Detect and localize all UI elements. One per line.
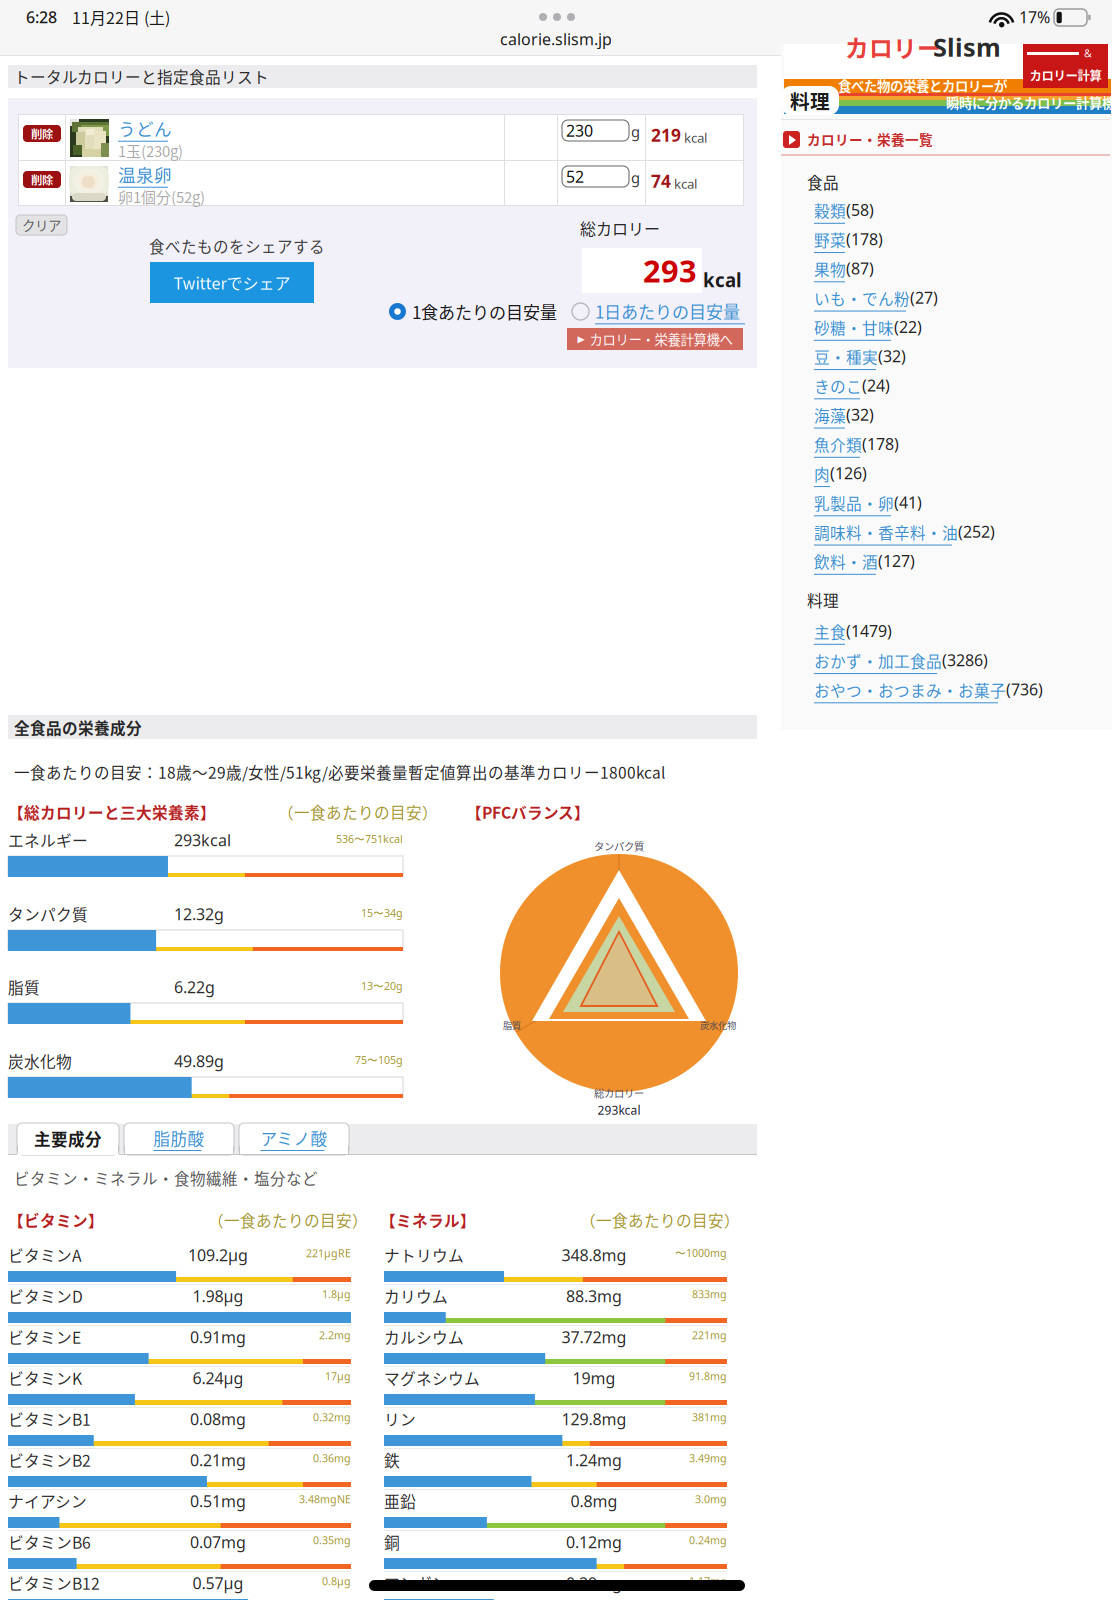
- button[interactable]: ▶: [567, 328, 743, 350]
- button[interactable]: 1食あたりの目安量: [389, 300, 561, 323]
- staticText: エネルギー: [8, 829, 88, 851]
- staticText: 脂肪酸: [153, 1126, 204, 1150]
- staticText: ナイアシン: [8, 1490, 87, 1512]
- staticText: 0.51mg: [190, 1490, 246, 1512]
- button[interactable]: Tab options: [530, 8, 584, 26]
- staticText: ▶: [577, 334, 584, 344]
- staticText: （一食あたりの目安）: [580, 1209, 740, 1231]
- staticText: （一食あたりの目安）: [278, 801, 438, 823]
- button[interactable]: 乳製品・卵: [814, 489, 1112, 518]
- button[interactable]: 魚介類: [814, 431, 1112, 460]
- staticText: 833mg: [692, 1287, 727, 1301]
- button[interactable]: Twitterでシェア: [150, 262, 314, 303]
- staticText: kcal: [703, 268, 742, 292]
- staticText: 〜1000mg: [675, 1246, 727, 1260]
- staticText: 219: [651, 123, 681, 146]
- staticText: 230: [566, 120, 593, 141]
- button[interactable]: クリア: [16, 215, 67, 235]
- staticText: kcal: [684, 129, 707, 146]
- staticText: (41): [894, 492, 922, 513]
- staticText: 銅: [384, 1531, 400, 1553]
- button[interactable]: 野菜: [814, 226, 1112, 255]
- button[interactable]: calorie.slism.jp: [500, 28, 612, 50]
- button[interactable]: 脂肪酸: [124, 1123, 234, 1154]
- button[interactable]: 削除: [23, 171, 61, 188]
- staticText: 12.32g: [174, 903, 224, 925]
- staticText: 0.91mg: [190, 1326, 246, 1348]
- staticText: 109.2µg: [188, 1244, 248, 1266]
- staticText: 13〜20g: [361, 979, 403, 993]
- staticText: おやつ・おつまみ・お菓子: [814, 679, 1006, 701]
- staticText: おかず・加工食品: [814, 649, 942, 672]
- staticText: きのこ: [814, 375, 862, 397]
- staticText: 74: [651, 169, 671, 192]
- staticText: カリウム: [384, 1285, 448, 1307]
- staticText: ナトリウム: [384, 1244, 464, 1266]
- staticText: 【ミネラル】: [380, 1209, 476, 1231]
- staticText: 0.8µg: [322, 1574, 351, 1588]
- button[interactable]: 主食: [814, 618, 1112, 647]
- button[interactable]: うどん: [118, 115, 172, 142]
- button[interactable]: 飲料・酒: [814, 548, 1112, 577]
- staticText: 52: [566, 166, 584, 187]
- staticText: 1.8µg: [322, 1287, 351, 1301]
- staticText: 魚介類: [814, 433, 862, 456]
- staticText: 豆・種実: [814, 345, 878, 368]
- staticText: 【総カロリーと三大栄養素】: [8, 801, 216, 823]
- button[interactable]: 肉: [814, 460, 1112, 489]
- staticText: 食べた物の栄養とカロリーが: [838, 76, 1007, 95]
- button[interactable]: 調味料・香辛料・油: [814, 519, 1112, 548]
- staticText: いも・でん粉: [814, 287, 910, 310]
- staticText: ビタミン・ミネラル・食物繊維・塩分など: [14, 1167, 318, 1189]
- staticText: 3.0mg: [695, 1492, 727, 1506]
- staticText: カロリー計算: [1029, 66, 1101, 84]
- staticText: 乳製品・卵: [814, 492, 894, 514]
- staticText: 3.49mg: [689, 1451, 727, 1465]
- button[interactable]: アミノ酸: [239, 1123, 349, 1154]
- staticText: 15〜34g: [361, 906, 403, 920]
- button[interactable]: 砂糖・甘味: [814, 314, 1112, 343]
- staticText: 17µg: [325, 1369, 351, 1383]
- button[interactable]: きのこ: [814, 372, 1112, 401]
- staticText: 鉄: [384, 1449, 400, 1471]
- button[interactable]: 温泉卵: [118, 161, 172, 188]
- staticText: トータルカロリーと指定食品リスト: [14, 65, 269, 88]
- button[interactable]: 削除: [23, 125, 61, 142]
- staticText: 0.08mg: [190, 1408, 246, 1430]
- staticText: 0.21mg: [190, 1449, 246, 1471]
- staticText: g: [631, 122, 640, 141]
- staticText: 0.35mg: [313, 1533, 351, 1547]
- staticText: 536〜751kcal: [336, 832, 403, 846]
- staticText: 1日あたりの目安量: [595, 299, 740, 323]
- staticText: 一食あたりの目安：18歳〜29歳/女性/51kg/必要栄養量暫定値算出の基準カロ…: [14, 761, 665, 783]
- button[interactable]: 主要成分: [17, 1123, 119, 1154]
- button[interactable]: 1日あたりの目安量: [572, 300, 744, 323]
- button[interactable]: 豆・種実: [814, 343, 1112, 372]
- staticText: (58): [846, 199, 874, 220]
- staticText: (178): [846, 228, 883, 250]
- staticText: ビタミンD: [8, 1285, 83, 1307]
- staticText: 主食: [814, 620, 846, 643]
- staticText: 0.29mg: [566, 1572, 622, 1594]
- staticText: リン: [384, 1408, 416, 1430]
- button[interactable]: 果物: [814, 255, 1112, 284]
- staticText: (32): [878, 345, 906, 367]
- staticText: （一食あたりの目安）: [208, 1209, 368, 1231]
- staticText: 37.72mg: [561, 1326, 626, 1348]
- staticText: 総カロリー: [594, 1085, 644, 1100]
- staticText: 主要成分: [34, 1126, 102, 1150]
- button[interactable]: おかず・加工食品: [814, 647, 1112, 676]
- staticText: 温泉卵: [118, 161, 172, 187]
- staticText: ビタミンE: [8, 1326, 81, 1348]
- button[interactable]: 穀類: [814, 197, 1112, 226]
- staticText: カロリー: [845, 30, 941, 64]
- staticText: 6:28: [26, 6, 57, 28]
- staticText: カロリー・栄養一覧: [807, 129, 933, 149]
- button[interactable]: いも・でん粉: [814, 285, 1112, 314]
- staticText: 1玉(230g): [118, 140, 183, 161]
- button[interactable]: おやつ・おつまみ・お菓子: [814, 676, 1112, 705]
- staticText: 6.22g: [174, 976, 215, 998]
- button[interactable]: 海藻: [814, 402, 1112, 431]
- staticText: 削除: [31, 171, 53, 188]
- staticText: ビタミンB12: [8, 1572, 100, 1594]
